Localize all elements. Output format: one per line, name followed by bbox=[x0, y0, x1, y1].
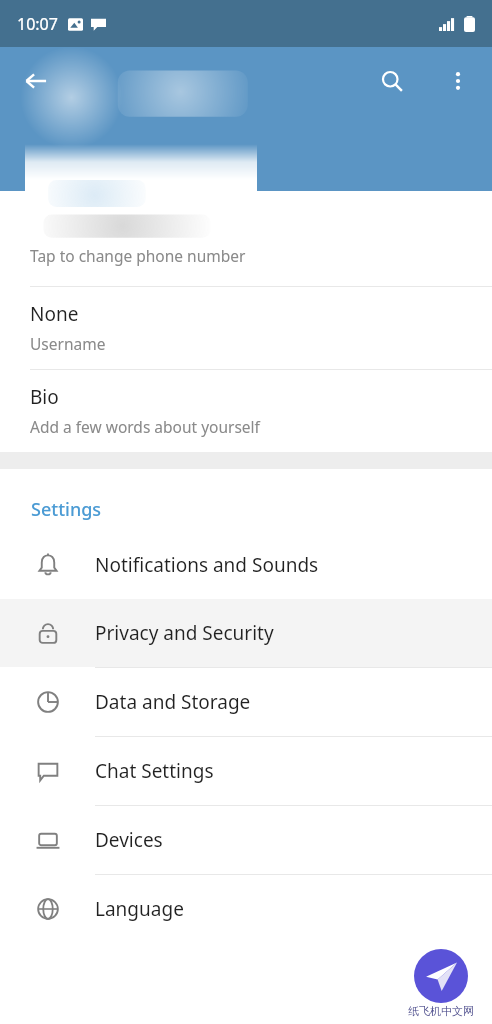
button[interactable]: Search bbox=[368, 57, 416, 105]
button[interactable]: Data and Storage bbox=[0, 668, 492, 736]
staticText: Settings bbox=[31, 497, 102, 522]
button[interactable]: More options bbox=[434, 57, 482, 105]
staticText: Tap to change phone number bbox=[30, 245, 246, 266]
staticText: Data and Storage bbox=[95, 689, 251, 715]
staticText: 10:07 bbox=[17, 13, 58, 35]
button[interactable]: Devices bbox=[0, 806, 492, 874]
staticText: Language bbox=[95, 896, 184, 922]
button[interactable] bbox=[25, 61, 257, 253]
button[interactable]: Language bbox=[0, 875, 492, 943]
staticText: Username bbox=[30, 333, 106, 354]
button[interactable]: Bio bbox=[0, 370, 492, 452]
button[interactable]: Notifications and Sounds bbox=[0, 531, 492, 599]
staticText: Devices bbox=[95, 827, 163, 853]
staticText: Notifications and Sounds bbox=[95, 552, 319, 578]
button[interactable]: None bbox=[0, 287, 492, 369]
button[interactable]: Privacy and Security bbox=[0, 599, 492, 667]
staticText: None bbox=[30, 301, 79, 327]
staticText: Chat Settings bbox=[95, 758, 214, 784]
button[interactable]: Tap to change phone number bbox=[0, 239, 492, 286]
button[interactable]: Back bbox=[12, 57, 60, 105]
staticText: 纸飞机中文网 bbox=[408, 1004, 474, 1018]
staticText: Bio bbox=[30, 384, 59, 410]
staticText: Add a few words about yourself bbox=[30, 416, 260, 437]
button[interactable]: Chat Settings bbox=[0, 737, 492, 805]
staticText: Privacy and Security bbox=[95, 620, 274, 646]
